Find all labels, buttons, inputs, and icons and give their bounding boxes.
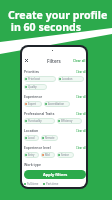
staticText: Clear all [73, 59, 86, 63]
button[interactable]: Punctuality [24, 118, 55, 124]
staticText: Apply filters [43, 172, 68, 177]
staticText: Senior [61, 153, 69, 157]
button[interactable]: Close [24, 58, 29, 63]
button[interactable]: Clear all [73, 59, 86, 63]
staticText: Priorities [24, 69, 40, 74]
button[interactable]: Clear all [76, 146, 86, 150]
button[interactable]: Apply filters [24, 170, 86, 179]
button[interactable]: Expert [24, 101, 42, 107]
button[interactable]: Local [24, 135, 39, 141]
button[interactable]: Clear all [76, 129, 86, 133]
staticText: Price/cost [28, 77, 40, 81]
button[interactable]: Clear all [76, 70, 86, 74]
button[interactable]: Efficiency [57, 118, 82, 124]
staticText: Location [24, 128, 39, 133]
staticText: Local [28, 136, 35, 140]
staticText: Part-time [46, 182, 59, 186]
staticText: Full-time [27, 182, 39, 186]
staticText: Mid [45, 153, 50, 157]
staticText: Professional Traits [24, 111, 55, 116]
staticText: Filters [47, 58, 61, 64]
staticText: Location [62, 77, 73, 81]
button[interactable]: Location [58, 76, 84, 82]
button[interactable]: Clear all [76, 95, 86, 99]
staticText: Quality [28, 85, 37, 89]
staticText: Create your profile in 60 seconds [8, 8, 108, 34]
button[interactable]: Senior [57, 152, 74, 158]
button[interactable]: Price/cost [24, 76, 56, 82]
button[interactable]: Clear all [76, 112, 86, 116]
button[interactable]: Quality [24, 84, 47, 90]
staticText: Work type [24, 162, 41, 167]
button[interactable]: Entry [24, 152, 39, 158]
staticText: Punctuality [28, 119, 42, 123]
button[interactable]: Mid [41, 152, 55, 158]
staticText: Accreditation [48, 102, 65, 106]
staticText: Expert [28, 102, 36, 106]
button[interactable]: Accreditation [44, 101, 70, 107]
staticText: Remote [45, 136, 55, 140]
staticText: Experience [24, 94, 43, 99]
button[interactable]: Remote [41, 135, 58, 141]
staticText: Entry [28, 153, 35, 157]
staticText: Efficiency [61, 119, 73, 123]
staticText: Experience level [24, 145, 51, 150]
